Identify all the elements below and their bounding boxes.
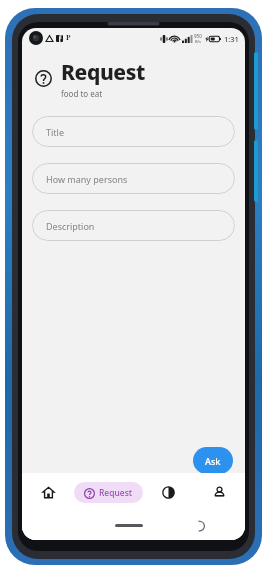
- button[interactable]: Description: [32, 210, 235, 241]
- button[interactable]: Ask: [193, 447, 233, 474]
- button[interactable]: Home: [22, 473, 74, 511]
- staticText: Ask: [205, 455, 221, 467]
- staticText: How many persons: [46, 173, 128, 185]
- button[interactable]: Profile: [194, 473, 245, 511]
- staticText: P: [66, 33, 71, 43]
- staticText: 950: [194, 33, 202, 39]
- staticText: 1:31: [224, 34, 239, 44]
- staticText: B/s: [195, 39, 202, 44]
- button[interactable]: Home gesture: [115, 524, 143, 527]
- button[interactable]: Title: [32, 116, 235, 147]
- staticText: Title: [46, 126, 64, 138]
- staticText: Description: [46, 220, 95, 232]
- button[interactable]: Back: [193, 518, 209, 534]
- button[interactable]: Theme: [143, 473, 194, 511]
- staticText: Request: [61, 58, 145, 87]
- staticText: Request: [99, 487, 133, 499]
- button[interactable]: How many persons: [32, 163, 235, 194]
- button[interactable]: Request: [74, 482, 143, 503]
- staticText: food to eat: [61, 88, 103, 99]
